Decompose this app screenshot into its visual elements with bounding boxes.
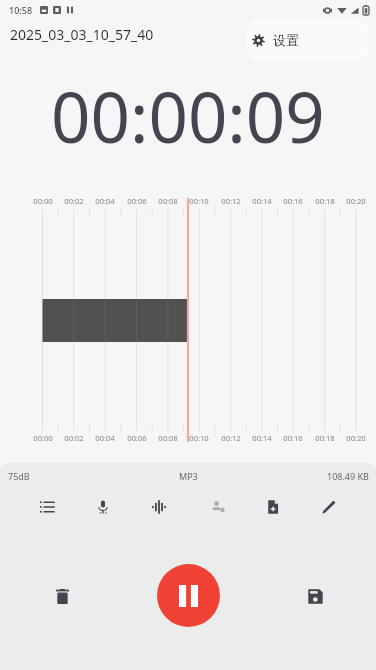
button[interactable]: 设置 <box>246 20 368 60</box>
staticText: 00:16 <box>278 196 308 206</box>
staticText: 10:58 <box>9 4 33 16</box>
staticText: 00:02 <box>59 433 89 443</box>
staticText: 00:16 <box>278 433 308 443</box>
button[interactable]: Edit <box>310 488 348 526</box>
button[interactable]: Pause <box>157 564 220 627</box>
staticText: 108.49 KB <box>327 470 369 482</box>
button[interactable]: Record <box>84 488 122 526</box>
staticText: 00:00 <box>28 196 58 206</box>
staticText: 设置 <box>273 32 299 48</box>
staticText: 00:00 <box>28 433 58 443</box>
staticText: 00:04 <box>90 196 120 206</box>
staticText: 00:18 <box>310 433 340 443</box>
button[interactable]: Delete <box>42 576 82 616</box>
staticText: 00:12 <box>216 433 246 443</box>
staticText: 00:08 <box>153 433 183 443</box>
staticText: 00:18 <box>310 196 340 206</box>
staticText: 00:00:09 <box>51 69 325 163</box>
staticText: 00:20 <box>341 433 371 443</box>
staticText: 00:10 <box>184 196 214 206</box>
staticText: 75dB <box>8 470 30 482</box>
staticText: 00:10 <box>184 433 214 443</box>
staticText: 00:06 <box>122 433 152 443</box>
button[interactable]: Recording list <box>28 488 66 526</box>
staticText: 00:04 <box>90 433 120 443</box>
button[interactable]: Share <box>199 488 237 526</box>
staticText: 00:14 <box>247 196 277 206</box>
staticText: 00:12 <box>216 196 246 206</box>
staticText: 2025_03_03_10_57_40 <box>10 25 154 44</box>
staticText: 00:02 <box>59 196 89 206</box>
button[interactable]: Waveform <box>140 488 178 526</box>
staticText: 00:20 <box>341 196 371 206</box>
staticText: 00:14 <box>247 433 277 443</box>
button[interactable]: New file <box>254 488 292 526</box>
staticText: MP3 <box>179 470 198 482</box>
staticText: 00:06 <box>122 196 152 206</box>
button[interactable]: Save <box>295 576 335 616</box>
staticText: 00:08 <box>153 196 183 206</box>
